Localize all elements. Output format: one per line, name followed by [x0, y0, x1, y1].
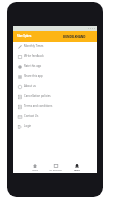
staticText: Write feedback [24, 54, 44, 58]
button[interactable]: Cancellation policies [13, 92, 97, 102]
staticText: Monthly Times [24, 44, 44, 48]
button[interactable]: More [66, 159, 87, 167]
other: Home [33, 164, 37, 168]
staticText: Terms and conditions [24, 104, 53, 108]
staticText: Cancellation policies [24, 94, 51, 98]
button[interactable]: Home [24, 159, 45, 167]
button[interactable]: My Bookings [45, 159, 66, 167]
staticText: More [74, 169, 80, 172]
button[interactable]: Contact Us [13, 112, 97, 122]
staticText: About us [24, 84, 36, 88]
staticText: My Bookings [49, 169, 62, 172]
other: More [75, 164, 79, 168]
staticText: Rate this app [24, 64, 42, 68]
staticText: Share this app [24, 74, 43, 78]
button[interactable]: Share this app [13, 72, 97, 82]
button[interactable]: Login [13, 122, 97, 132]
button[interactable]: Write feedback [13, 52, 97, 62]
button[interactable]: Rate this app [13, 62, 97, 72]
other: My Bookings [54, 164, 58, 168]
button[interactable]: About us [13, 82, 97, 92]
button[interactable]: Monthly Times [13, 42, 97, 52]
staticText: Home [32, 169, 38, 172]
staticText: More Options [17, 34, 32, 38]
staticText: BUNDELKHAND [63, 35, 86, 39]
staticText: Login [24, 124, 32, 128]
staticText: Contact Us [24, 114, 39, 118]
button[interactable]: Terms and conditions [13, 102, 97, 112]
